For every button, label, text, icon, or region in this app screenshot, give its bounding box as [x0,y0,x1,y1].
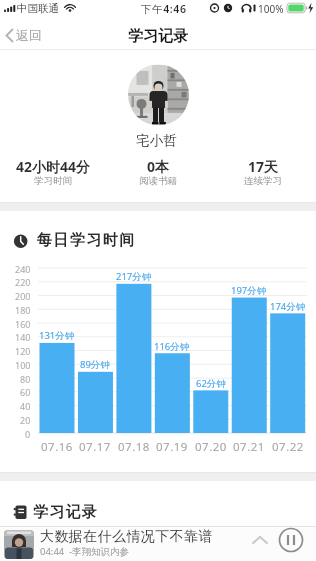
staticText: 大数据在什么情况下不靠谱 [40,528,213,545]
button[interactable] [0,526,316,561]
staticText: 200 [15,290,31,302]
staticText: 80 [20,373,31,385]
staticText: 140 [15,331,31,343]
staticText: 17天 [248,157,279,176]
staticText: 100 [15,359,31,371]
staticText: 60 [20,386,31,398]
staticText: 07.20 [195,439,227,454]
staticText: 89分钟 [80,358,110,371]
staticText: 197分钟 [231,284,267,297]
staticText: 07.16 [41,439,73,454]
staticText: 100% [258,2,284,16]
staticText: 217分钟 [116,270,152,283]
staticText: 120 [15,345,31,357]
button[interactable] [276,525,306,555]
button[interactable]: 返回 [2,22,42,48]
staticText: 42小时44分 [16,157,91,176]
staticText: 07.22 [272,439,304,454]
staticText: 40 [20,400,31,412]
staticText: 131分钟 [39,329,75,342]
staticText: 04:44 [40,545,65,558]
staticText: 0本 [147,157,170,176]
staticText: 学习记录 [128,27,188,46]
staticText: 返回 [16,27,42,43]
staticText: 学习记录 [33,503,98,522]
staticText: 07.17 [79,439,111,454]
staticText: 阅读书籍 [139,175,177,187]
staticText: 180 [15,304,31,316]
staticText: 中国联通 [17,2,59,15]
staticText: 下午4:46 [141,2,187,16]
staticText: 学习时间 [34,175,72,187]
staticText: -李翔知识内参 [69,545,130,558]
staticText: 宅小哲 [136,132,177,149]
staticText: 连续学习 [244,175,282,187]
staticText: 20 [20,414,31,426]
staticText: 07.21 [233,439,265,454]
staticText: 160 [15,318,31,330]
staticText: 0 [25,428,31,440]
staticText: 174分钟 [270,300,306,313]
staticText: 116分钟 [154,340,190,353]
staticText: 07.18 [118,439,150,454]
staticText: 220 [15,276,31,288]
staticText: 每日学习时间 [36,231,135,250]
staticText: 240 [15,263,31,275]
staticText: 07.19 [156,439,188,454]
staticText: 62分钟 [196,377,226,390]
